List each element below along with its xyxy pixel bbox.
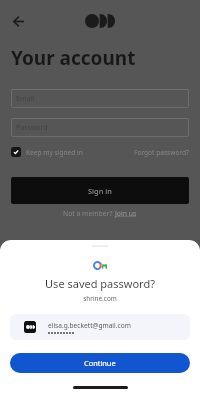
staticText: Not a member?	[63, 209, 115, 218]
button[interactable]: elisa.g.beckett@gmail.com	[10, 314, 190, 340]
staticText: Use saved password?	[0, 276, 200, 291]
button[interactable]: Password	[11, 118, 189, 137]
button[interactable]: Continue	[10, 353, 190, 373]
staticText: shrine.com	[0, 294, 200, 303]
staticText: Sign in	[88, 186, 112, 196]
staticText: Email	[16, 94, 34, 104]
button[interactable]: Email	[11, 89, 189, 108]
staticText: Your account	[11, 45, 136, 71]
button[interactable]: Keep my signed in	[11, 147, 83, 157]
staticText: elisa.g.beckett@gmail.com	[48, 321, 131, 330]
button[interactable]: Sign in	[11, 177, 189, 204]
button[interactable]: Forgot password?	[134, 148, 189, 157]
button[interactable]: Join us	[115, 209, 137, 218]
staticText: Password	[16, 123, 48, 133]
button[interactable]: Back	[7, 10, 29, 32]
staticText: Continue	[84, 358, 116, 368]
staticText: Keep my signed in	[26, 148, 83, 157]
